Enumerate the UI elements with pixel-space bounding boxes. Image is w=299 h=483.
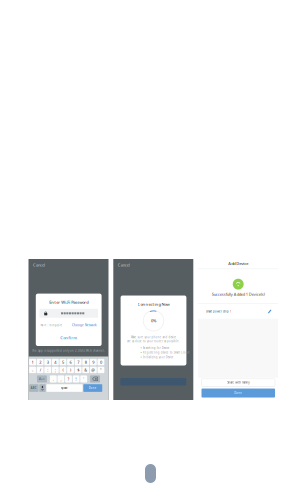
button[interactable]: ! [73, 375, 79, 382]
staticText: Cancel [118, 262, 130, 267]
staticText: ( [62, 367, 63, 372]
button[interactable]: 2 [37, 359, 43, 365]
button[interactable]: ; [52, 367, 59, 373]
staticText: / [40, 367, 41, 372]
staticText: 0 [100, 359, 102, 365]
staticText: 9 [92, 359, 94, 365]
staticText: Registering device to Smart Cloud [143, 351, 190, 354]
staticText: " [100, 367, 102, 372]
staticText: are as close to your router as possible. [127, 339, 180, 343]
button[interactable]: 3 [44, 359, 51, 365]
staticText: Cancel [33, 262, 45, 267]
button[interactable]: Done [201, 388, 275, 397]
button[interactable]: 7 [75, 359, 81, 365]
button[interactable]: #+= [37, 375, 47, 382]
staticText: Confirm [60, 335, 77, 340]
staticText: Searching for Device [143, 346, 170, 350]
staticText: Change Network [72, 323, 97, 327]
button[interactable]: Cancel [118, 263, 131, 267]
button[interactable]: 4 [52, 359, 59, 365]
button[interactable]: 6 [67, 359, 74, 365]
button[interactable]: Share with Family [201, 379, 275, 386]
button[interactable]: ( [59, 367, 66, 373]
staticText: ? [67, 376, 69, 382]
button[interactable]: Dictate [39, 384, 46, 392]
button[interactable]: Cancel [33, 263, 46, 267]
button[interactable]: , [57, 375, 64, 382]
staticText: Connecting Now [137, 301, 169, 307]
button[interactable]: @ [90, 367, 97, 373]
staticText: - [32, 367, 33, 372]
staticText: 3 [47, 359, 49, 365]
staticText: 0% [151, 318, 156, 323]
button[interactable]: 5 [59, 359, 66, 365]
staticText: : [47, 367, 48, 372]
staticText: Wi-Fi : Ringcore [40, 323, 62, 327]
button[interactable]: . [50, 375, 57, 382]
staticText: Enter Wi-Fi Password [49, 299, 88, 305]
staticText: Done [234, 391, 242, 395]
staticText: ) [70, 367, 71, 372]
staticText: Make sure your phone and device [130, 335, 176, 339]
button[interactable]: Confirm [36, 336, 102, 340]
staticText: 8 [85, 359, 87, 365]
staticText: Add Device [228, 261, 248, 266]
button[interactable]: Done [83, 384, 102, 392]
button[interactable]: 1 [29, 359, 36, 365]
staticText: ; [55, 367, 56, 372]
button[interactable]: ? [65, 375, 72, 382]
staticText: ! [76, 376, 77, 382]
staticText: . [53, 376, 54, 382]
staticText: & [84, 367, 87, 372]
staticText: 1 [31, 359, 33, 365]
button[interactable]: smart power strip 1 [198, 304, 278, 319]
button[interactable]: - [29, 367, 36, 373]
staticText: Successfully Added 1 Device(s) [212, 292, 265, 297]
button[interactable]: : [44, 367, 51, 373]
staticText: ABC [31, 386, 37, 390]
staticText: 7 [77, 359, 79, 365]
button[interactable]: ' [80, 375, 87, 382]
staticText: The app is supported only on 2.4Ghz Wi-F… [32, 349, 105, 352]
button[interactable]: $ [75, 367, 81, 373]
button[interactable]: ABC [29, 384, 38, 392]
button[interactable]: 9 [90, 359, 97, 365]
button[interactable]: / [37, 367, 43, 373]
button[interactable]: Delete [90, 375, 100, 382]
staticText: ' [83, 376, 84, 382]
staticText: 6 [69, 359, 71, 365]
button[interactable]: " [97, 367, 104, 373]
staticText: $ [77, 367, 79, 372]
button[interactable]: Change Network [72, 323, 97, 327]
button[interactable]: 8 [82, 359, 89, 365]
staticText: Done [89, 386, 97, 390]
staticText: Share with Family [227, 381, 249, 384]
button[interactable]: ) [67, 367, 74, 373]
button[interactable]: space [46, 384, 83, 392]
staticText: smart power strip 1 [206, 310, 232, 313]
staticText: @ [91, 367, 95, 372]
staticText: space [61, 386, 68, 390]
staticText: 5 [62, 359, 64, 365]
staticText: Initializing your Device [143, 355, 174, 359]
button[interactable]: 0 [97, 359, 104, 365]
button[interactable]: & [82, 367, 89, 373]
staticText: 2 [39, 359, 41, 365]
staticText: #+= [39, 377, 45, 381]
staticText: , [60, 376, 61, 382]
staticText: 4 [54, 359, 56, 365]
